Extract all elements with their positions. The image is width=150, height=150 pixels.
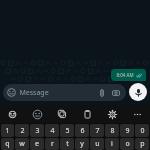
staticText: y: [80, 139, 84, 149]
staticText: 8: [110, 126, 115, 136]
staticText: 2: [20, 126, 25, 136]
staticText: 6: [80, 126, 85, 136]
button[interactable]: 8:04 AM: [111, 69, 146, 81]
staticText: o: [125, 139, 130, 149]
button[interactable]: o: [120, 138, 134, 150]
staticText: 4: [50, 126, 55, 136]
button[interactable]: Settings: [100, 105, 125, 123]
staticText: 7: [95, 126, 100, 136]
button[interactable]: 9: [120, 124, 134, 137]
staticText: 9: [125, 126, 130, 136]
staticText: u: [95, 139, 100, 149]
button[interactable]: 2: [15, 124, 29, 137]
staticText: p: [140, 139, 145, 149]
staticText: 8:04 AM: [116, 72, 134, 78]
button[interactable]: Message: [3, 84, 126, 101]
button[interactable]: q: [1, 138, 14, 150]
button[interactable]: u: [90, 138, 104, 150]
button[interactable]: 3: [30, 124, 44, 137]
button[interactable]: More: [125, 105, 150, 123]
button[interactable]: i: [105, 138, 119, 150]
button[interactable]: 7: [90, 124, 104, 137]
staticText: 3: [35, 126, 40, 136]
button[interactable]: t: [60, 138, 74, 150]
staticText: t: [66, 139, 69, 149]
staticText: q: [5, 139, 10, 149]
staticText: 1: [5, 126, 10, 136]
button[interactable]: e: [30, 138, 44, 150]
button[interactable]: 6: [75, 124, 89, 137]
button[interactable]: 1: [1, 124, 14, 137]
button[interactable]: Camera: [110, 87, 122, 99]
staticText: i: [111, 139, 113, 149]
button[interactable]: y: [75, 138, 89, 150]
staticText: 0: [140, 126, 145, 136]
staticText: w: [19, 139, 25, 149]
button[interactable]: w: [15, 138, 29, 150]
staticText: e: [35, 139, 39, 149]
button[interactable]: 4: [45, 124, 59, 137]
button[interactable]: p: [135, 138, 149, 150]
button[interactable]: Emoji: [25, 105, 50, 123]
staticText: Message: [19, 88, 49, 98]
button[interactable]: 0: [135, 124, 149, 137]
button[interactable]: r: [45, 138, 59, 150]
staticText: 5: [65, 126, 70, 136]
button[interactable]: 8: [105, 124, 119, 137]
button[interactable]: Voice message: [129, 83, 147, 101]
button[interactable]: 5: [60, 124, 74, 137]
button[interactable]: Clipboard: [75, 105, 100, 123]
button[interactable]: GIF: [50, 105, 75, 123]
button[interactable]: Attach: [96, 87, 108, 99]
button[interactable]: Stickers: [0, 105, 25, 123]
staticText: r: [51, 139, 54, 149]
